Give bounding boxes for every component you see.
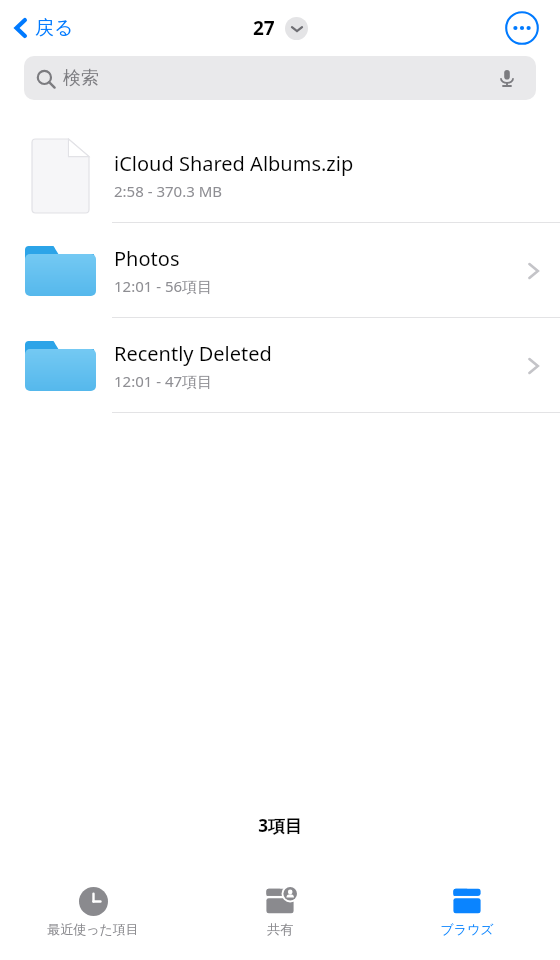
staticText: 27 — [253, 15, 275, 41]
staticText: Recently Deleted — [114, 340, 272, 367]
staticText: 検索 — [63, 67, 99, 90]
staticText: 戻る — [35, 16, 74, 40]
staticText: ブラウズ — [440, 921, 494, 937]
button[interactable]: iCloud Shared Albums.zip — [0, 128, 560, 223]
button[interactable]: Recently Deleted — [0, 318, 560, 413]
button[interactable]: Photos — [0, 223, 560, 318]
staticText: iCloud Shared Albums.zip — [114, 150, 354, 177]
button[interactable]: ブラウズ — [373, 880, 560, 937]
staticText: 2:58 - 370.3 MB — [114, 181, 222, 201]
staticText: 最近使った項目 — [47, 921, 139, 937]
button[interactable]: Voice search — [494, 65, 520, 91]
staticText: 共有 — [267, 921, 293, 937]
staticText: 12:01 - 56項目 — [114, 276, 213, 296]
button[interactable]: More — [504, 10, 540, 46]
staticText: 3項目 — [0, 814, 560, 837]
staticText: Photos — [114, 245, 180, 272]
button[interactable]: 戻る — [0, 10, 84, 46]
button[interactable]: 最近使った項目 — [0, 880, 186, 937]
button[interactable]: More options — [285, 17, 308, 40]
button[interactable]: 共有 — [186, 880, 373, 937]
staticText: 12:01 - 47項目 — [114, 371, 213, 391]
button[interactable]: 検索 — [24, 56, 536, 100]
